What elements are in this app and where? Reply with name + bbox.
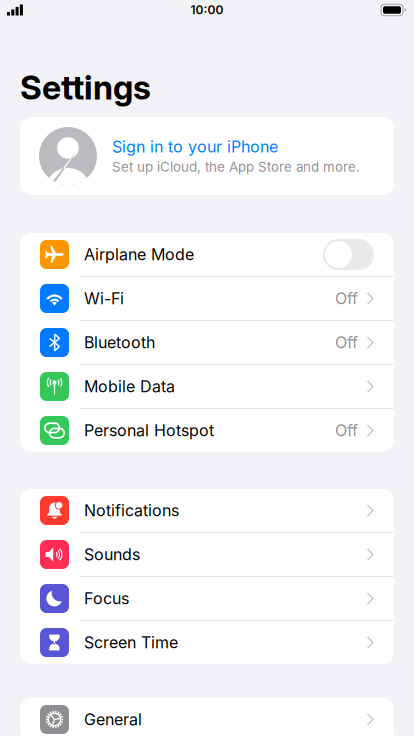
button[interactable]: Mobile Data bbox=[20, 365, 394, 408]
staticText: Settings bbox=[20, 68, 151, 107]
button[interactable]: Focus bbox=[20, 577, 394, 620]
button[interactable]: Personal Hotspot bbox=[20, 409, 394, 452]
staticText: Bluetooth bbox=[84, 333, 155, 352]
staticText: Focus bbox=[84, 589, 129, 608]
staticText: Sounds bbox=[84, 545, 140, 564]
staticText: Mobile Data bbox=[84, 377, 175, 396]
staticText: Off bbox=[335, 289, 358, 308]
button[interactable]: General bbox=[20, 698, 394, 736]
staticText: Wi-Fi bbox=[84, 289, 124, 308]
button[interactable]: Screen Time bbox=[20, 621, 394, 664]
staticText: Airplane Mode bbox=[84, 245, 194, 264]
button[interactable]: Bluetooth bbox=[20, 321, 394, 364]
staticText: Personal Hotspot bbox=[84, 421, 214, 440]
staticText: 10:00 bbox=[190, 3, 223, 17]
button[interactable]: Notifications bbox=[20, 489, 394, 532]
button[interactable]: Sign in to your iPhone bbox=[20, 117, 394, 195]
staticText: Set up iCloud, the App Store and more. bbox=[112, 159, 360, 175]
staticText: Notifications bbox=[84, 501, 179, 520]
staticText: Sign in to your iPhone bbox=[112, 137, 278, 156]
button[interactable]: Airplane Mode bbox=[20, 233, 394, 276]
staticText: Screen Time bbox=[84, 633, 178, 652]
staticText: Off bbox=[335, 333, 358, 352]
staticText: General bbox=[84, 710, 142, 729]
staticText: Off bbox=[335, 421, 358, 440]
button[interactable]: Sounds bbox=[20, 533, 394, 576]
button[interactable]: Wi-Fi bbox=[20, 277, 394, 320]
